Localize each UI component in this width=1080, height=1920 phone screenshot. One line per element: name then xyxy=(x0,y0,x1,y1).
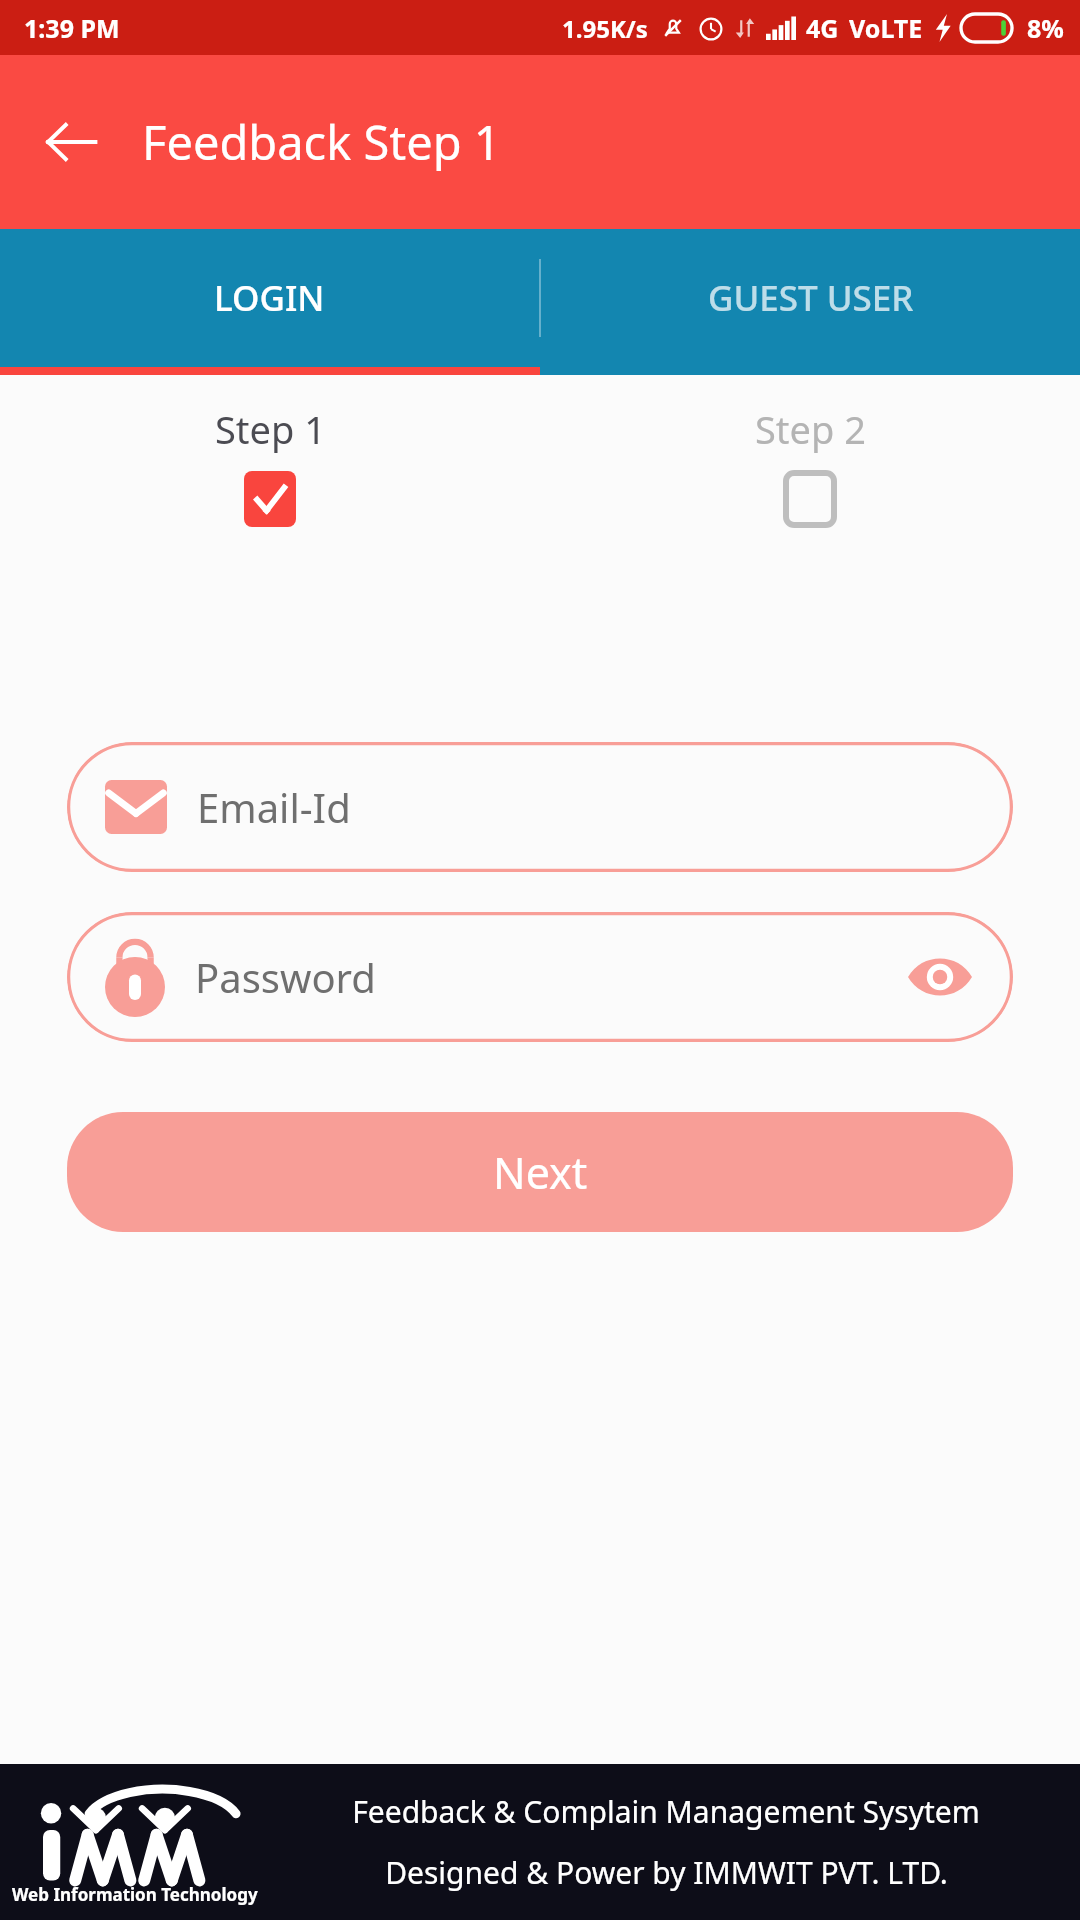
button[interactable]: Step 1 xyxy=(0,403,540,527)
staticText: Password xyxy=(195,950,376,1004)
button[interactable]: Show password xyxy=(905,942,975,1012)
staticText: Step 1 xyxy=(215,403,326,455)
button[interactable]: GUEST USER xyxy=(541,229,1080,367)
staticText: Next xyxy=(493,1143,588,1202)
staticText: 8% xyxy=(1027,11,1064,45)
button[interactable]: Next xyxy=(67,1112,1013,1232)
staticText: Email-Id xyxy=(197,780,351,834)
button[interactable]: Back xyxy=(30,101,112,183)
staticText: GUEST USER xyxy=(708,274,914,322)
button[interactable]: LOGIN xyxy=(0,229,539,367)
staticText: Step 2 xyxy=(755,403,866,455)
staticText: 4G xyxy=(806,11,839,45)
staticText: LOGIN xyxy=(214,274,325,322)
button[interactable]: Email-Id xyxy=(67,742,1013,872)
staticText: Feedback & Complain Management Sysytem xyxy=(352,1791,980,1832)
button[interactable]: Password xyxy=(67,912,1013,1042)
staticText: 1:39 PM xyxy=(24,11,120,45)
staticText: Designed & Power by IMMWIT PVT. LTD. xyxy=(385,1852,948,1893)
button[interactable]: Step 2 xyxy=(540,403,1080,527)
staticText: 1.95K/s xyxy=(562,12,648,45)
staticText: VoLTE xyxy=(849,11,923,45)
staticText: Feedback Step 1 xyxy=(142,110,501,174)
staticText: Web Information Technology xyxy=(12,1883,258,1906)
